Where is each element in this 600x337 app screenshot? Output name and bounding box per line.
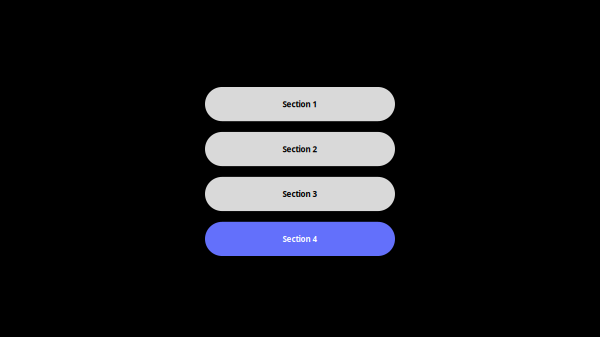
staticText: Section 4 bbox=[282, 234, 317, 244]
button[interactable]: Section 2 bbox=[205, 132, 395, 166]
staticText: Section 3 bbox=[282, 189, 317, 199]
staticText: Section 1 bbox=[282, 99, 317, 109]
button[interactable]: Section 4 bbox=[205, 222, 395, 256]
button[interactable]: Section 3 bbox=[205, 177, 395, 211]
staticText: Section 2 bbox=[282, 144, 317, 154]
button[interactable]: Section 1 bbox=[205, 87, 395, 121]
